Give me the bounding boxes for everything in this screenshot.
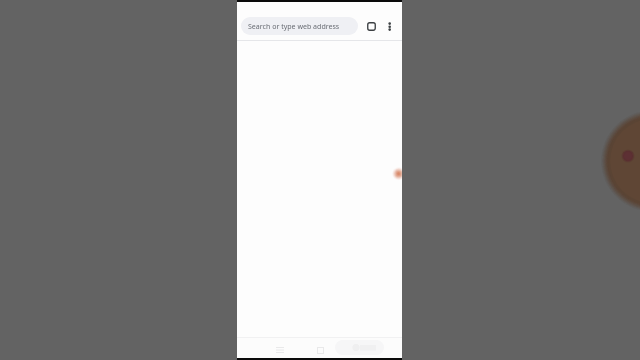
button[interactable]: Switch or open tabs	[361, 16, 382, 37]
button[interactable]: Search or type web address	[241, 17, 358, 35]
button[interactable]: More options	[380, 16, 400, 36]
staticText: Search or type web address	[248, 21, 340, 31]
button[interactable]: Recent apps	[272, 342, 288, 358]
button[interactable]: Home	[312, 342, 328, 358]
